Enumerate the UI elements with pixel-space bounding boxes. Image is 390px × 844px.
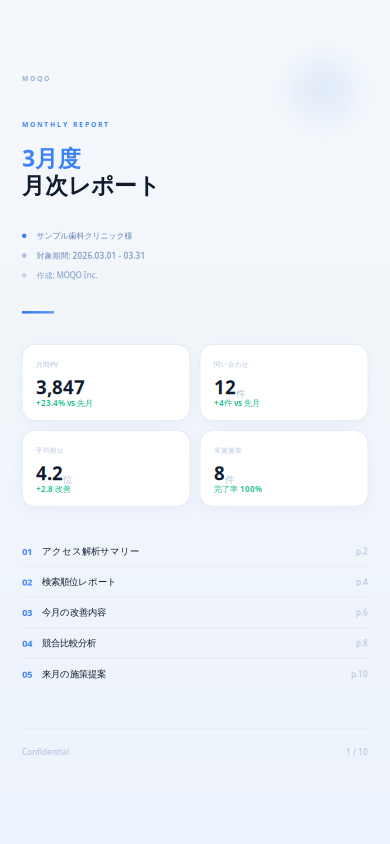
staticText: アクセス解析サマリー [42, 546, 139, 557]
staticText: 平均順位 [36, 446, 64, 455]
staticText: p.6 [356, 607, 368, 618]
staticText: 03 [22, 606, 32, 619]
staticText: 02 [22, 576, 32, 588]
staticText: 来月の施策提案 [42, 668, 106, 680]
button[interactable]: 01 [22, 536, 368, 567]
staticText: +4件 vs 先月 [214, 397, 260, 408]
button[interactable]: 02 [22, 567, 368, 598]
staticText: 月次レポート [22, 172, 160, 200]
staticText: Confidential [22, 746, 69, 757]
staticText: +2.8 改善 [36, 483, 71, 494]
staticText: 12 [214, 374, 236, 399]
staticText: 3,847 [36, 374, 85, 399]
staticText: 対象期間: 2026.03.01 - 03.31 [36, 250, 145, 261]
staticText: 01 [22, 545, 32, 557]
staticText: 月間PV [36, 360, 58, 369]
staticText: p.8 [356, 638, 368, 648]
staticText: 04 [22, 637, 32, 649]
staticText: 今月の改善内容 [42, 607, 106, 618]
staticText: 検索順位レポート [42, 576, 117, 588]
staticText: 問い合わせ [214, 360, 249, 369]
staticText: 4.2 [36, 460, 63, 485]
staticText: 件 [225, 474, 234, 485]
staticText: 位 [63, 474, 72, 485]
staticText: 競合比較分析 [42, 637, 96, 649]
staticText: 1 / 10 [346, 746, 368, 757]
staticText: p.2 [356, 546, 368, 557]
staticText: サンプル歯科クリニック様 [36, 231, 132, 241]
staticText: 作成: MOQO Inc. [36, 270, 97, 280]
button[interactable]: 04 [22, 628, 368, 659]
button[interactable]: 03 [22, 598, 368, 628]
staticText: +23.4% vs 先月 [36, 397, 93, 408]
staticText: p.4 [356, 577, 368, 587]
button[interactable]: 05 [22, 659, 368, 689]
staticText: 完了率 100% [214, 483, 262, 494]
staticText: M O Q O [22, 74, 49, 83]
staticText: 8 [214, 460, 225, 485]
staticText: 件 [236, 388, 245, 399]
staticText: 3月度 [22, 143, 81, 173]
staticText: 実施施策 [214, 446, 242, 455]
staticText: 05 [22, 668, 32, 680]
staticText: M O N T H L Y R E P O R T [22, 120, 108, 129]
staticText: p.10 [351, 669, 368, 679]
